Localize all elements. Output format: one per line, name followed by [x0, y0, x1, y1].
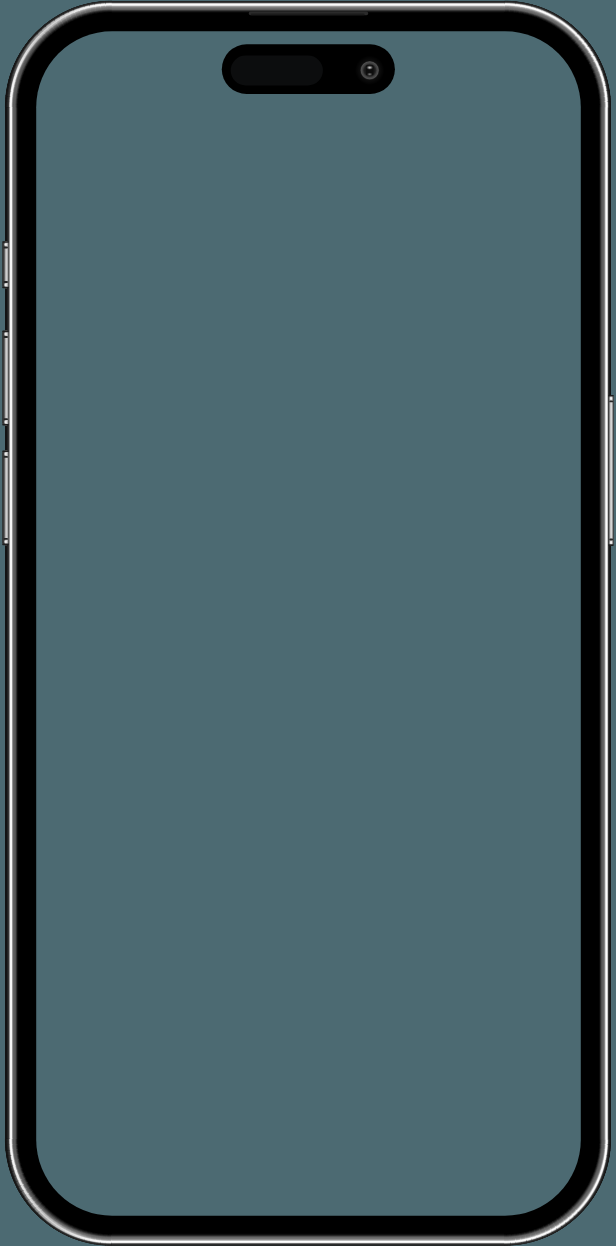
other: Phone device frame preview: [0, 0, 616, 1246]
